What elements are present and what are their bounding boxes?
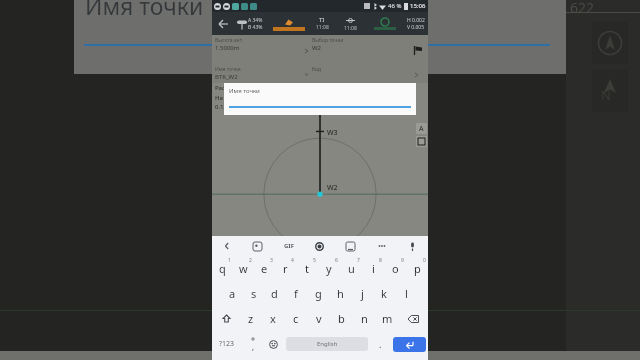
staticText: Аз:179°06'08.64" <box>316 84 428 92</box>
staticText: Код <box>312 66 321 73</box>
button[interactable]: GIF <box>282 240 296 252</box>
staticText: BTK_W2 <box>215 73 238 81</box>
button[interactable]: l <box>395 281 417 306</box>
button[interactable]: A 34% <box>234 17 265 31</box>
button[interactable]: f <box>285 281 307 306</box>
staticText: W2 <box>312 44 322 52</box>
staticText: j <box>361 286 364 301</box>
button[interactable]: d <box>264 281 285 306</box>
staticText: 0.1319m <box>215 103 286 111</box>
staticText: a <box>229 286 236 301</box>
staticText: g <box>315 286 322 301</box>
staticText: x <box>270 311 276 326</box>
button[interactable]: Back <box>212 12 234 35</box>
button[interactable]: g <box>307 281 329 306</box>
button[interactable]: Settings <box>304 236 335 256</box>
staticText: 0 <box>423 257 426 264</box>
staticText: 0.0021m <box>286 103 357 111</box>
staticText: p <box>414 261 421 276</box>
button[interactable] <box>372 17 398 30</box>
staticText: z <box>248 311 254 326</box>
button[interactable]: Back <box>212 236 242 256</box>
button[interactable]: q <box>212 256 233 281</box>
button[interactable]: v <box>307 306 330 331</box>
staticText: m <box>382 311 393 326</box>
staticText: ?123 <box>219 339 235 349</box>
staticText: y <box>326 261 332 276</box>
button[interactable]: t <box>296 256 318 281</box>
button[interactable]: k <box>373 281 395 306</box>
button[interactable]: i <box>362 256 384 281</box>
staticText: r <box>283 261 288 276</box>
staticText: 11:08 <box>344 25 357 32</box>
button[interactable]: English <box>286 337 368 351</box>
button[interactable]: a <box>222 281 243 306</box>
staticText: A 34% <box>248 17 263 24</box>
button[interactable]: Shift <box>212 306 240 331</box>
button[interactable]: p <box>406 256 428 281</box>
button[interactable]: Clipboard <box>335 236 366 256</box>
button[interactable]: o <box>384 256 406 281</box>
staticText: q <box>219 261 226 276</box>
staticText: 622 <box>570 0 595 17</box>
staticText: h <box>337 286 344 301</box>
button[interactable]: c <box>284 306 307 331</box>
staticText: V 0.005 <box>407 24 425 31</box>
button[interactable] <box>272 17 306 31</box>
button[interactable]: m <box>376 306 399 331</box>
staticText: A <box>419 124 424 134</box>
staticText: , <box>252 341 255 352</box>
button[interactable]: s <box>243 281 264 306</box>
button[interactable]: y <box>318 256 340 281</box>
button[interactable]: r <box>275 256 296 281</box>
button[interactable]: Comma <box>242 331 263 357</box>
button[interactable]: n <box>353 306 376 331</box>
button[interactable]: Flag <box>406 35 428 66</box>
button[interactable]: North up <box>592 70 628 112</box>
staticText: b <box>338 311 345 326</box>
button[interactable]: More <box>366 236 397 256</box>
button[interactable]: u <box>340 256 362 281</box>
staticText: 4 <box>291 257 294 264</box>
button[interactable]: b <box>330 306 353 331</box>
staticText: 8 <box>379 257 382 264</box>
button[interactable]: Backspace <box>399 306 428 331</box>
staticText: n <box>361 311 368 326</box>
staticText: . <box>379 338 382 350</box>
staticText: N <box>601 86 611 104</box>
staticText: s <box>251 286 257 301</box>
staticText: GIF <box>284 242 294 250</box>
button[interactable]: 11:08 <box>338 16 362 32</box>
staticText: 6 <box>335 257 338 264</box>
button[interactable]: ?123 <box>212 331 242 357</box>
button[interactable]: w <box>233 256 254 281</box>
button[interactable]: Layers <box>416 136 427 147</box>
staticText: o <box>392 261 399 276</box>
button[interactable]: Stickers <box>242 236 273 256</box>
button[interactable]: j <box>351 281 373 306</box>
staticText: На Юг <box>215 94 286 102</box>
button[interactable]: H 0.002 <box>407 17 428 31</box>
staticText: H 0.002 <box>407 17 425 24</box>
staticText: w <box>239 261 248 276</box>
staticText: 11:08 <box>316 24 329 31</box>
staticText: 5 <box>313 257 316 264</box>
button[interactable]: Emoji <box>263 331 284 357</box>
staticText: 46 % <box>388 2 402 10</box>
button[interactable]: Enter <box>393 337 426 352</box>
button[interactable]: x <box>262 306 284 331</box>
staticText: Выбор точки <box>312 37 344 44</box>
staticText: i <box>372 261 375 276</box>
button[interactable]: TI <box>311 16 333 31</box>
button[interactable]: Voice input <box>397 236 428 256</box>
button[interactable]: My location <box>592 22 628 64</box>
button[interactable]: e <box>254 256 275 281</box>
button[interactable]: Letter A <box>416 123 427 134</box>
button[interactable]: h <box>329 281 351 306</box>
staticText: o <box>305 71 309 78</box>
button[interactable]: z <box>240 306 262 331</box>
staticText: t <box>305 261 309 276</box>
button[interactable]: Period <box>370 331 391 357</box>
